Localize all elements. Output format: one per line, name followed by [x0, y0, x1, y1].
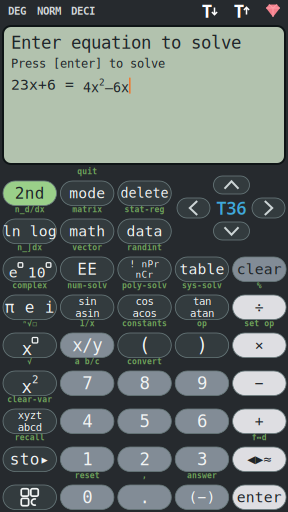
button[interactable]: Up	[213, 176, 249, 194]
staticText: quit	[77, 167, 97, 176]
button[interactable]: Increase text size	[232, 3, 252, 19]
staticText: n_∫dx	[17, 243, 42, 252]
staticText: 7	[82, 373, 92, 393]
button[interactable]: EE	[60, 257, 114, 281]
button[interactable]: Down	[213, 222, 249, 240]
button[interactable]: ÷	[233, 295, 286, 319]
staticText: ×	[255, 337, 264, 353]
button[interactable]: (−)	[175, 485, 229, 509]
staticText: 10	[28, 264, 46, 281]
staticText: DECI	[71, 5, 95, 17]
button[interactable]: 9	[175, 371, 229, 395]
button[interactable]: 4	[60, 409, 114, 433]
button[interactable]: ×	[233, 333, 286, 357]
button[interactable]: (	[118, 333, 171, 357]
staticText: (	[139, 335, 150, 356]
staticText: 23x+6 =	[11, 76, 83, 93]
staticText: T	[234, 0, 244, 22]
button[interactable]: 3	[175, 447, 229, 471]
button[interactable]: Right	[252, 198, 285, 218]
staticText: Press [enter] to solve	[11, 57, 165, 70]
button[interactable]: sto▸	[3, 447, 56, 471]
button[interactable]: x	[3, 371, 56, 395]
button[interactable]: 7	[60, 371, 114, 395]
button[interactable]: sin	[60, 295, 114, 319]
staticText: x/y	[72, 335, 102, 355]
staticText: acos	[133, 307, 157, 319]
staticText: convert	[127, 357, 162, 366]
button[interactable]: math	[60, 219, 114, 243]
button[interactable]: e	[3, 257, 56, 281]
staticText: sys-solv	[182, 281, 222, 290]
staticText: ⁿ√◻	[22, 319, 37, 328]
button[interactable]: tan	[175, 295, 229, 319]
staticText: clear	[237, 261, 282, 277]
staticText: DEG	[8, 5, 26, 17]
button[interactable]: .	[118, 485, 171, 509]
staticText: cos	[136, 295, 154, 307]
staticText: √	[27, 357, 32, 366]
staticText: )	[196, 335, 207, 356]
button[interactable]: Premium	[264, 3, 282, 19]
staticText: (−)	[188, 489, 215, 505]
staticText: NORM	[37, 5, 61, 17]
staticText: a b/c	[75, 357, 100, 366]
staticText: 8	[140, 373, 150, 393]
button[interactable]: Decrease text size	[200, 3, 220, 19]
staticText: 2	[32, 373, 38, 385]
button[interactable]: 6	[175, 409, 229, 433]
staticText: −	[255, 375, 264, 391]
staticText: recall	[15, 433, 45, 442]
button[interactable]: 2	[118, 447, 171, 471]
button[interactable]: table	[175, 257, 229, 281]
staticText: 9	[197, 373, 207, 393]
staticText: answer	[187, 471, 217, 480]
staticText: n_d/dx	[15, 205, 45, 214]
staticText: reset	[75, 471, 100, 480]
button[interactable]: π e i	[3, 295, 56, 319]
staticText: +	[255, 413, 264, 429]
button[interactable]: xyzt	[3, 409, 56, 433]
staticText: 2nd	[15, 184, 45, 202]
button[interactable]: ◀▶≈	[233, 447, 286, 471]
staticText: mode	[69, 185, 105, 201]
staticText: data	[127, 223, 163, 239]
staticText: vector	[72, 243, 102, 252]
button[interactable]: 1	[60, 447, 114, 471]
button[interactable]: +	[233, 409, 286, 433]
button[interactable]: delete	[118, 181, 171, 205]
staticText: EE	[77, 260, 97, 278]
staticText: 5	[140, 411, 150, 431]
staticText: complex	[12, 281, 47, 290]
staticText: ◀▶≈	[247, 452, 271, 467]
button[interactable]: )	[175, 333, 229, 357]
button[interactable]: −	[233, 371, 286, 395]
staticText: set op	[244, 319, 274, 328]
staticText: T36	[216, 196, 246, 219]
button[interactable]: mode	[60, 181, 114, 205]
staticText: 6	[197, 411, 207, 431]
button[interactable]: x/y	[60, 333, 114, 357]
staticText: matrix	[72, 205, 102, 214]
button[interactable]: clear	[233, 257, 286, 281]
button[interactable]: Left	[177, 198, 210, 218]
staticText: e	[9, 264, 18, 281]
button[interactable]: ! nPr	[118, 257, 171, 281]
button[interactable]: 0	[60, 485, 114, 509]
button[interactable]	[3, 485, 56, 509]
button[interactable]: 5	[118, 409, 171, 433]
button[interactable]: x	[3, 333, 56, 357]
staticText: T	[202, 0, 212, 22]
button[interactable]: 8	[118, 371, 171, 395]
button[interactable]: enter	[233, 485, 286, 509]
staticText: 2	[140, 449, 150, 469]
staticText: atan	[190, 307, 214, 319]
staticText: num-solv	[67, 281, 107, 290]
staticText: abcd	[18, 421, 42, 433]
button[interactable]: 2nd	[3, 181, 56, 205]
button[interactable]: cos	[118, 295, 171, 319]
button[interactable]: data	[118, 219, 171, 243]
button[interactable]: ln log	[3, 219, 56, 243]
staticText: stat-reg	[125, 205, 165, 214]
staticText: ÷	[255, 299, 264, 315]
